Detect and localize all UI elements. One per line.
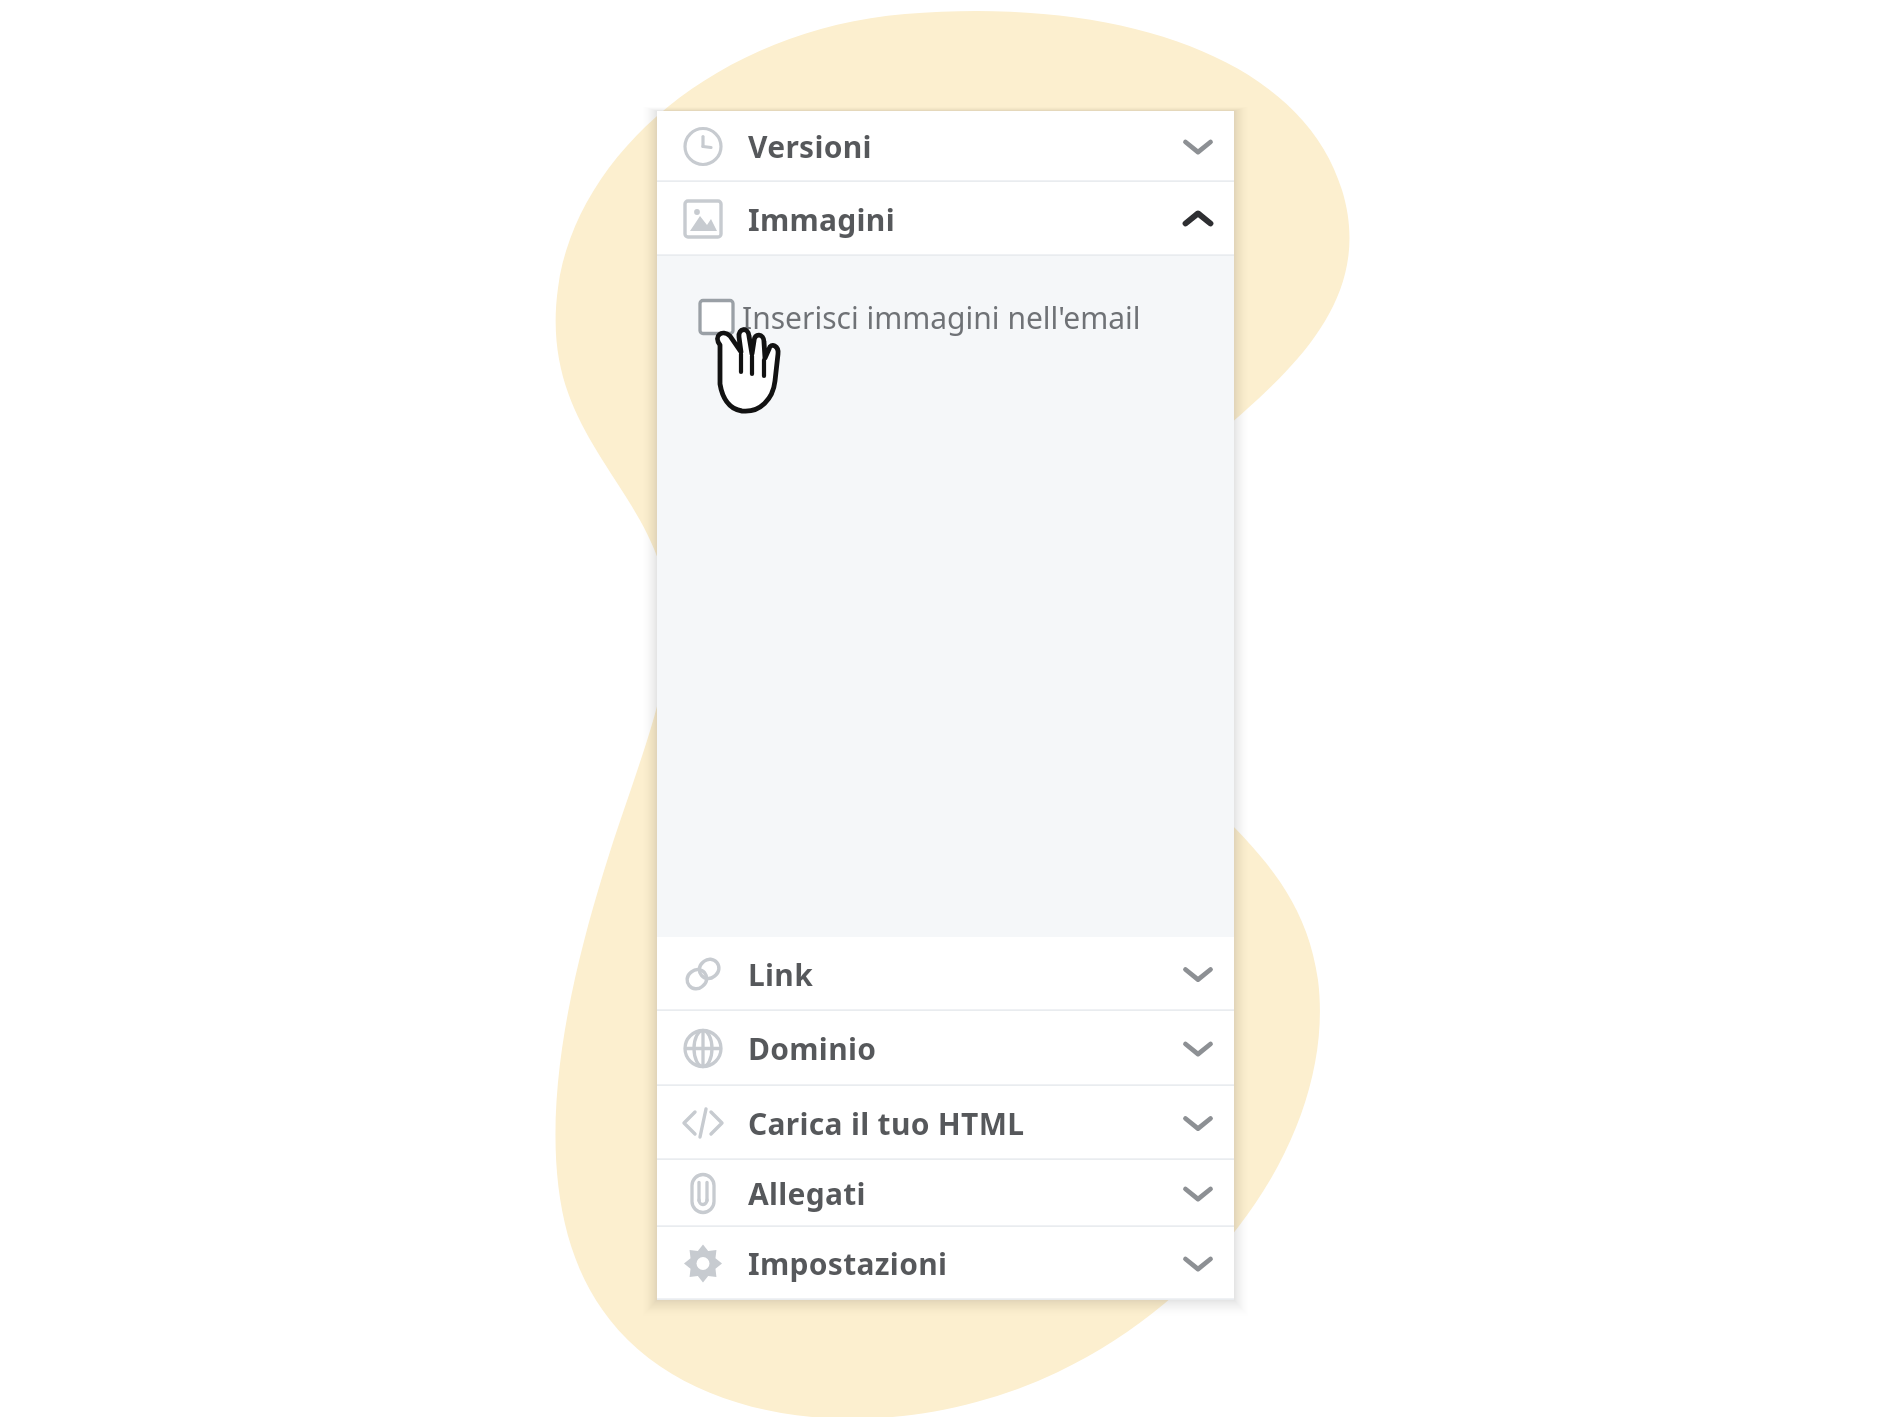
- button[interactable]: Carica il tuo HTML: [657, 1086, 1234, 1160]
- button[interactable]: Versioni: [657, 111, 1234, 182]
- button[interactable]: Allegati: [657, 1160, 1234, 1227]
- button[interactable]: Dominio: [657, 1011, 1234, 1086]
- staticText: Dominio: [748, 1028, 877, 1069]
- staticText: Link: [748, 954, 814, 995]
- staticText: Versioni: [748, 126, 872, 167]
- staticText: Immagini: [748, 199, 895, 240]
- staticText: Impostazioni: [748, 1243, 948, 1284]
- staticText: Allegati: [748, 1173, 866, 1214]
- button[interactable]: Impostazioni: [657, 1227, 1234, 1300]
- button[interactable]: Inserisci immagini nell'email: [690, 291, 1120, 343]
- button[interactable]: Link: [657, 937, 1234, 1011]
- staticText: Inserisci immagini nell'email: [742, 297, 1141, 338]
- staticText: Carica il tuo HTML: [748, 1103, 1025, 1144]
- button[interactable]: Immagini: [657, 182, 1234, 256]
- other: Inserisci immagini nell'email: [690, 291, 742, 343]
